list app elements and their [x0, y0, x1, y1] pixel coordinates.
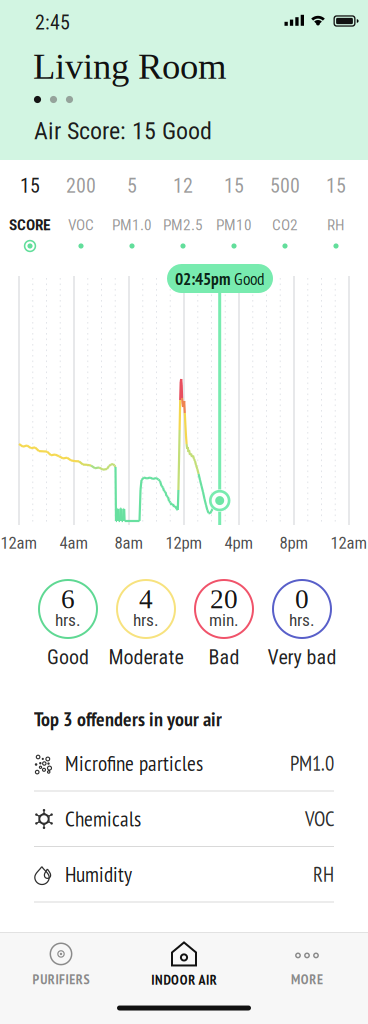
staticText: 20: [210, 584, 238, 614]
staticText: Good: [47, 646, 89, 669]
button[interactable]: PURIFIERS: [6, 938, 116, 992]
staticText: 15: [224, 174, 244, 198]
staticText: 0: [295, 584, 309, 614]
staticText: Humidity: [65, 860, 132, 888]
staticText: 15: [326, 174, 346, 198]
staticText: PM1.0: [112, 216, 152, 234]
button[interactable]: 5: [105, 176, 159, 237]
staticText: Chemicals: [65, 805, 141, 832]
staticText: RH: [313, 861, 334, 887]
button[interactable]: 15: [207, 176, 261, 237]
staticText: CO2: [272, 216, 298, 234]
staticText: Moderate: [108, 646, 183, 669]
staticText: 2:45: [35, 11, 70, 34]
button[interactable]: 02:45pm: [167, 264, 273, 293]
staticText: Very bad: [267, 646, 336, 669]
staticText: min.: [209, 610, 239, 630]
staticText: VOC: [305, 805, 334, 832]
button[interactable]: 15: [309, 176, 363, 237]
button[interactable]: [117, 1005, 251, 1010]
staticText: SCORE: [9, 216, 51, 234]
staticText: VOC: [68, 216, 94, 234]
staticText: PURIFIERS: [33, 970, 89, 988]
staticText: 8am: [114, 533, 143, 553]
staticText: 12: [173, 174, 193, 198]
staticText: 200: [66, 174, 96, 198]
staticText: 4pm: [224, 533, 253, 553]
staticText: 4: [139, 584, 153, 614]
staticText: Bad: [208, 646, 239, 669]
staticText: hrs.: [289, 610, 315, 630]
staticText: RH: [327, 216, 345, 234]
button[interactable]: 20: [190, 575, 258, 643]
staticText: Living Room: [33, 46, 227, 87]
staticText: 500: [270, 174, 300, 198]
staticText: INDOOR AIR: [151, 970, 217, 988]
button[interactable]: 500: [258, 176, 312, 237]
staticText: PM2.5: [163, 216, 203, 234]
staticText: PM10: [216, 216, 252, 234]
button[interactable]: Humidity: [34, 846, 334, 901]
staticText: 8pm: [279, 533, 308, 553]
staticText: 15: [20, 174, 40, 198]
button[interactable]: 4: [112, 575, 180, 643]
button[interactable]: Chemicals: [34, 791, 334, 846]
staticText: 12am: [330, 533, 367, 553]
staticText: PM1.0: [290, 750, 334, 776]
staticText: 5: [127, 174, 137, 198]
button[interactable]: 0: [268, 575, 336, 643]
staticText: Microfine particles: [65, 749, 203, 777]
button[interactable]: Microfine particles: [34, 735, 334, 790]
staticText: hrs.: [55, 610, 81, 630]
button[interactable]: 15: [3, 176, 57, 237]
staticText: 12am: [0, 533, 37, 553]
staticText: MORE: [291, 970, 323, 988]
staticText: hrs.: [133, 610, 159, 630]
staticText: Air Score: 15 Good: [34, 117, 212, 145]
staticText: Top 3 offenders in your air: [34, 706, 222, 732]
button[interactable]: MORE: [252, 938, 362, 992]
button[interactable]: 200: [54, 176, 108, 237]
button[interactable]: 12: [156, 176, 210, 237]
staticText: 4am: [59, 533, 88, 553]
staticText: Good: [234, 267, 265, 290]
button[interactable]: 6: [34, 575, 102, 643]
button[interactable]: INDOOR AIR: [129, 938, 239, 992]
staticText: 02:45pm: [175, 267, 230, 290]
staticText: 6: [61, 584, 75, 614]
staticText: 12pm: [165, 533, 202, 553]
